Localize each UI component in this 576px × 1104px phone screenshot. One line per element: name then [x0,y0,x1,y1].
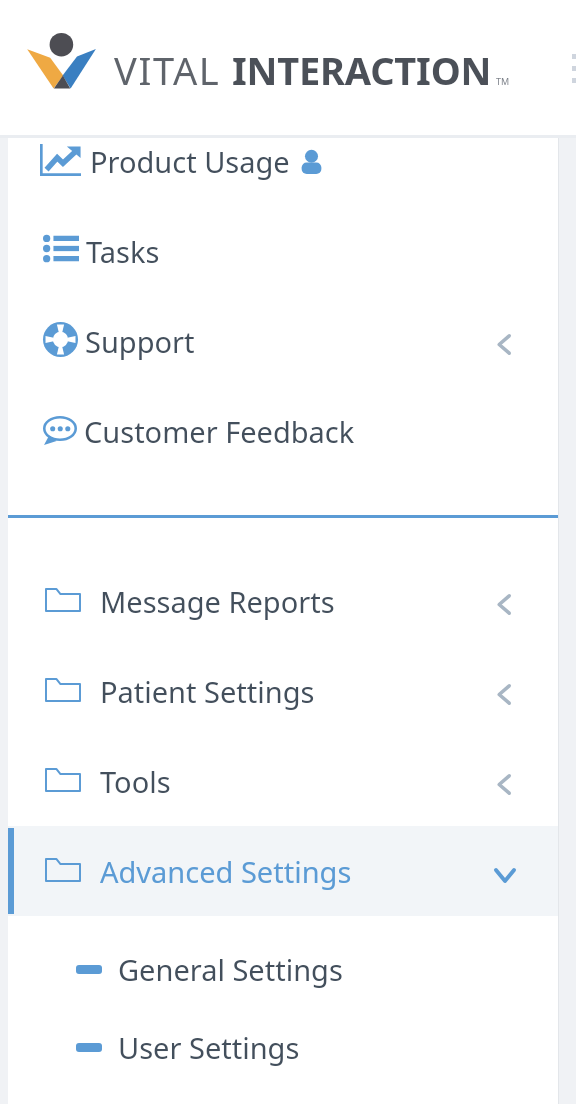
button[interactable]: Advanced Settings [8,826,558,916]
staticText: Tools [100,762,171,801]
staticText: User Settings [118,1028,300,1067]
staticText: Customer Feedback [84,412,355,451]
staticText: Support [85,322,195,361]
staticText: General Settings [118,950,343,989]
staticText: Patient Settings [100,672,315,711]
button[interactable]: Message Reports [8,556,558,646]
button[interactable]: More options [566,46,576,90]
staticText: TM [496,75,510,87]
button[interactable]: Tools [8,736,558,826]
button[interactable]: User Settings [8,1008,558,1086]
staticText: Advanced Settings [100,852,352,891]
button[interactable]: Product Usage [8,116,558,206]
button[interactable]: General Settings [8,930,558,1008]
staticText: VITAL [114,44,232,96]
button[interactable]: Customer Feedback [8,386,558,476]
staticText: INTERACTION [232,44,492,96]
staticText: Message Reports [100,582,335,621]
button[interactable]: Support [8,296,558,386]
button[interactable]: Patient Settings [8,646,558,736]
staticText: Tasks [86,232,160,271]
button[interactable]: Tasks [8,206,558,296]
staticText: Product Usage [90,142,290,181]
